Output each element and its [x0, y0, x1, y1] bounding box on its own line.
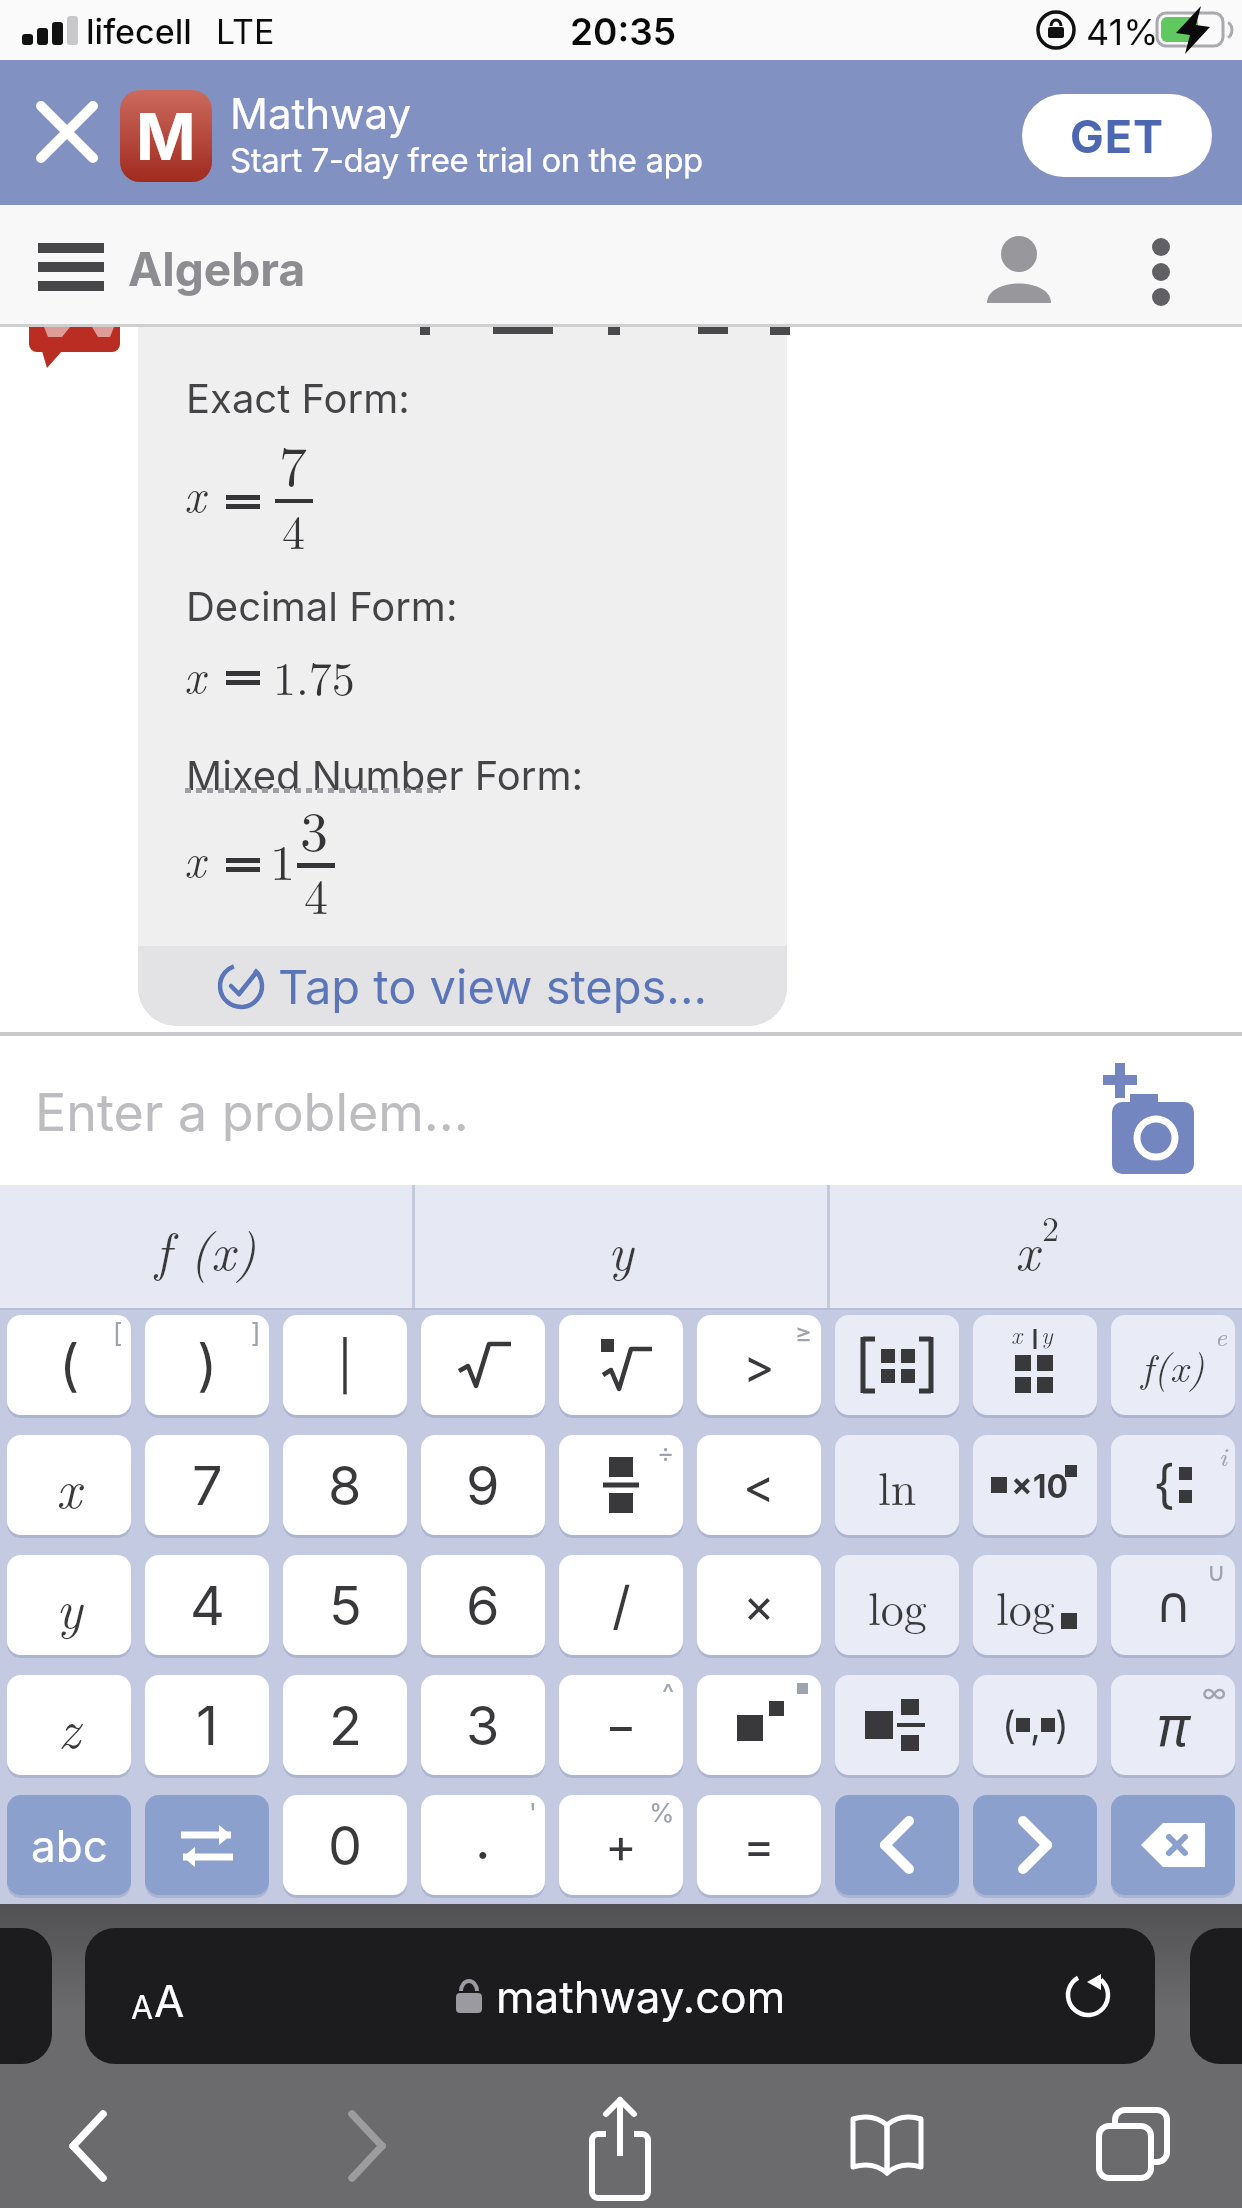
button[interactable]: ÷	[559, 1435, 683, 1535]
button[interactable]	[975, 225, 1065, 311]
button[interactable]	[845, 2109, 929, 2208]
button[interactable]	[30, 96, 104, 170]
staticText: Enter a problem...	[35, 1081, 469, 1144]
button[interactable]: 8	[283, 1435, 407, 1535]
button[interactable]: ×	[697, 1555, 821, 1655]
button[interactable]: |	[283, 1315, 407, 1415]
button[interactable]: z	[7, 1675, 131, 1775]
staticText: x	[56, 1447, 82, 1523]
button[interactable]	[835, 1795, 959, 1895]
staticText: 2	[329, 1693, 362, 1758]
staticText: ≥	[795, 1317, 813, 1348]
button[interactable]	[559, 1315, 683, 1415]
button[interactable]: (	[973, 1675, 1097, 1775]
button[interactable]	[145, 1795, 269, 1895]
button[interactable]: 3	[421, 1675, 545, 1775]
button[interactable]	[580, 2094, 660, 2206]
button[interactable]: y	[415, 1185, 827, 1310]
staticText: (	[59, 1331, 80, 1399]
staticText: ∪	[1207, 1557, 1227, 1587]
staticText: e	[1215, 1317, 1227, 1354]
staticText: f (x)	[155, 1211, 257, 1285]
button[interactable]	[1122, 225, 1202, 311]
staticText: 6	[466, 1573, 500, 1638]
button[interactable]: f(x)	[1111, 1315, 1235, 1415]
button[interactable]: log	[973, 1555, 1097, 1655]
button[interactable]: log	[835, 1555, 959, 1655]
button[interactable]: +	[559, 1795, 683, 1895]
button[interactable]: 1	[145, 1675, 269, 1775]
button[interactable]: .	[421, 1795, 545, 1895]
button[interactable]: >	[697, 1315, 821, 1415]
button[interactable]: 0	[283, 1795, 407, 1895]
staticText: >	[743, 1336, 775, 1394]
button[interactable]: {	[1111, 1435, 1235, 1535]
button[interactable]: ln	[835, 1435, 959, 1535]
button[interactable]: <	[697, 1435, 821, 1535]
button[interactable]: (	[7, 1315, 131, 1415]
button[interactable]: Enter a problem...	[0, 1036, 1242, 1185]
button[interactable]: f (x)	[0, 1185, 412, 1310]
staticText: f(x)	[1141, 1337, 1205, 1394]
button[interactable]: x	[973, 1315, 1097, 1415]
button[interactable]: 5	[283, 1555, 407, 1655]
button[interactable]	[55, 2104, 125, 2194]
button[interactable]: π	[1111, 1675, 1235, 1775]
staticText: Decimal Form:	[186, 582, 458, 630]
button[interactable]: 9	[421, 1435, 545, 1535]
button[interactable]	[835, 1315, 959, 1415]
staticText: A	[131, 1988, 154, 2027]
button[interactable]: 7	[145, 1435, 269, 1535]
button[interactable]: GET	[1022, 94, 1212, 177]
button[interactable]: )	[145, 1315, 269, 1415]
button[interactable]	[1095, 2104, 1185, 2204]
staticText: (	[1002, 1702, 1016, 1748]
button[interactable]	[330, 2104, 400, 2194]
button[interactable]: ∩	[1111, 1555, 1235, 1655]
staticText: x	[1015, 1211, 1040, 1285]
button[interactable]: /	[559, 1555, 683, 1655]
staticText: 2	[1042, 1203, 1059, 1251]
staticText: mathway.com	[496, 1970, 786, 2023]
staticText: GET	[1070, 109, 1165, 163]
staticText: y	[1041, 1317, 1053, 1351]
staticText: ^	[662, 1677, 675, 1708]
button[interactable]: x	[830, 1185, 1242, 1310]
button[interactable]: 4	[145, 1555, 269, 1655]
button[interactable]	[24, 229, 120, 309]
button[interactable]: =	[697, 1795, 821, 1895]
button[interactable]: abc	[7, 1795, 131, 1895]
staticText: 9	[466, 1453, 500, 1518]
staticText: 5	[329, 1573, 362, 1638]
staticText: /	[612, 1574, 631, 1637]
staticText: ∞	[1202, 1677, 1227, 1708]
button[interactable]	[697, 1675, 821, 1775]
staticText: 0	[328, 1813, 363, 1878]
button[interactable]	[973, 1795, 1097, 1895]
button[interactable]	[1111, 1795, 1235, 1895]
staticText: y	[608, 1211, 634, 1285]
staticText: 8	[328, 1453, 362, 1518]
button[interactable]: A	[85, 1928, 1155, 2064]
button[interactable]	[421, 1315, 545, 1415]
staticText: =	[743, 1816, 775, 1874]
staticText: Mathway	[230, 88, 412, 139]
button[interactable]: y	[7, 1555, 131, 1655]
button[interactable]: 2	[283, 1675, 407, 1775]
staticText: x	[184, 641, 206, 706]
staticText: ∩	[1155, 1576, 1192, 1634]
button[interactable]: ×10	[973, 1435, 1097, 1535]
staticText: log	[868, 1573, 927, 1638]
staticText: log	[996, 1573, 1055, 1638]
staticText: Start 7-day free trial on the app	[230, 140, 703, 180]
staticText: .	[475, 1807, 491, 1872]
button[interactable]: x	[7, 1435, 131, 1535]
staticText: ÷	[657, 1437, 675, 1468]
staticText: ×	[743, 1576, 775, 1634]
button[interactable]: Tap to view steps...	[138, 946, 787, 1026]
button[interactable]: −	[559, 1675, 683, 1775]
staticText: <	[743, 1456, 775, 1514]
button[interactable]	[835, 1675, 959, 1775]
button[interactable]	[1090, 1056, 1210, 1166]
button[interactable]: 6	[421, 1555, 545, 1655]
